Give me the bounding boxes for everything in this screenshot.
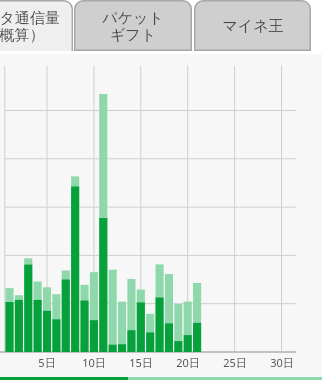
staticText: 25日 (210, 355, 260, 370)
staticText: 30日 (257, 355, 307, 370)
button[interactable]: データ通信量 （概算） (0, 0, 73, 51)
staticText: パケット ギフト (102, 9, 164, 45)
staticText: 15日 (116, 355, 166, 370)
staticText: データ通信量 （概算） (0, 9, 60, 45)
staticText: 5日 (22, 355, 72, 370)
button[interactable]: マイネ王 (194, 0, 311, 51)
staticText: 20日 (163, 355, 213, 370)
button[interactable]: パケット ギフト (74, 0, 192, 51)
staticText: マイネ王 (222, 17, 284, 36)
staticText: 10日 (69, 355, 119, 370)
